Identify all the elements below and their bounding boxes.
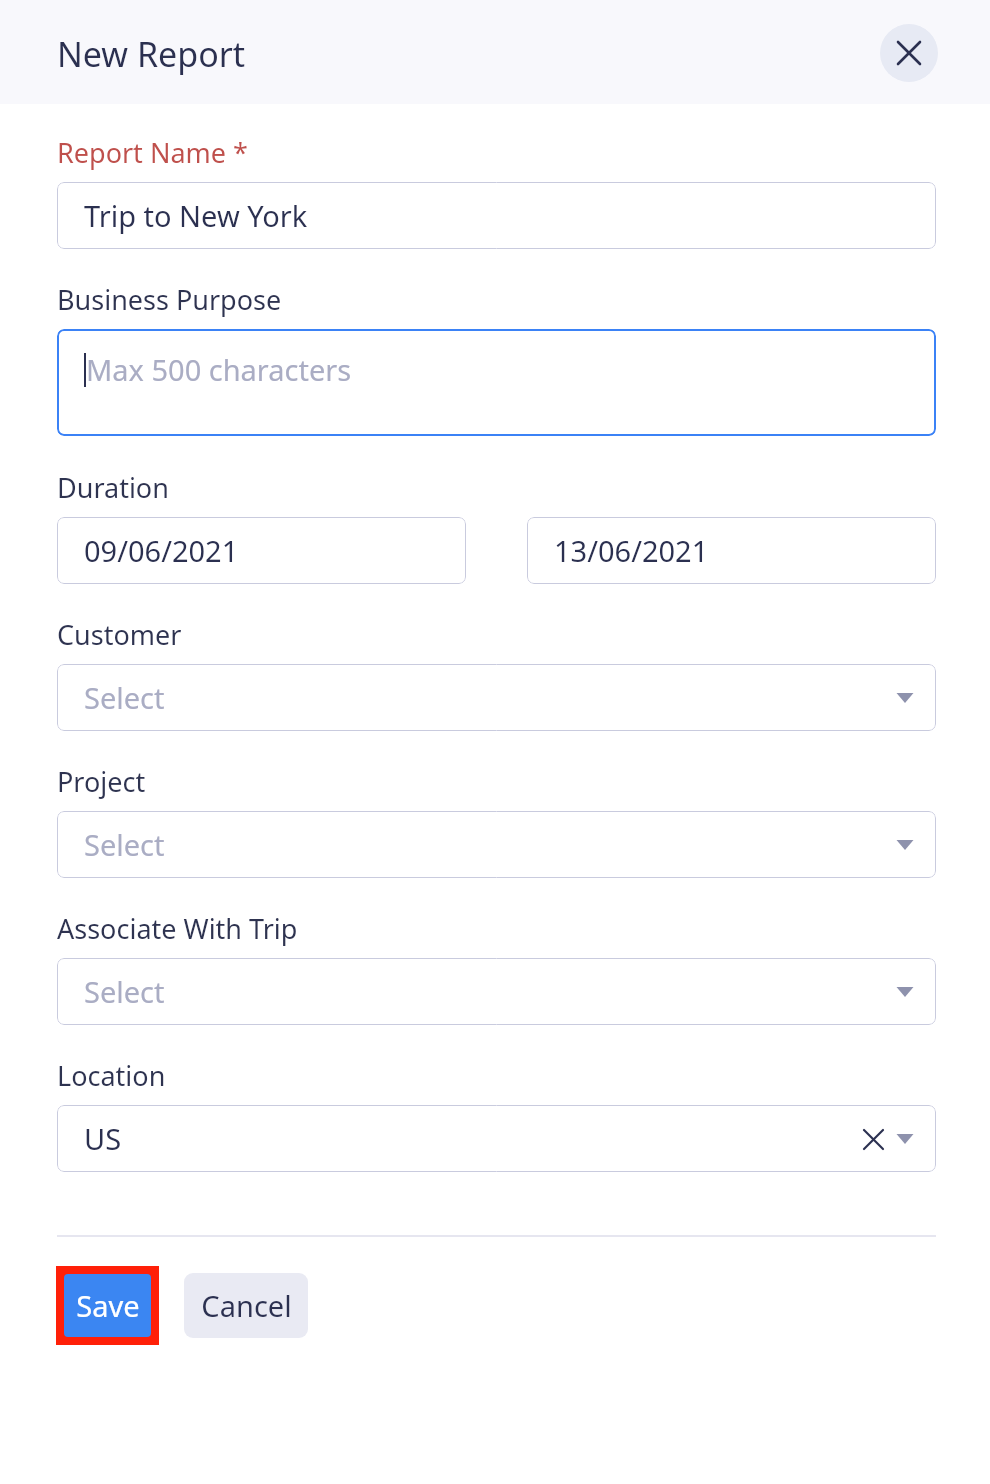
staticText: New Report	[57, 31, 246, 77]
staticText: US	[84, 1119, 122, 1158]
button[interactable]: Max 500 characters	[57, 329, 936, 436]
button[interactable]: Select	[57, 664, 936, 731]
button[interactable]: Close	[880, 24, 938, 82]
staticText: Customer	[57, 616, 182, 653]
staticText: Associate With Trip	[57, 910, 298, 947]
staticText: Trip to New York	[84, 196, 308, 235]
staticText: Select	[84, 972, 165, 1011]
staticText: Save	[76, 1286, 140, 1325]
staticText: Report Name *	[57, 134, 248, 171]
staticText: Duration	[57, 469, 169, 506]
button[interactable]: Clear location	[858, 1124, 888, 1154]
button[interactable]: US	[57, 1105, 936, 1172]
staticText: Select	[84, 825, 165, 864]
staticText: Location	[57, 1057, 166, 1094]
button[interactable]: Select	[57, 811, 936, 878]
staticText: 13/06/2021	[554, 531, 709, 570]
staticText: Max 500 characters	[86, 350, 352, 389]
button[interactable]: Cancel	[184, 1273, 308, 1338]
button[interactable]: 13/06/2021	[527, 517, 936, 584]
staticText: 09/06/2021	[84, 531, 239, 570]
staticText: Business Purpose	[57, 281, 282, 318]
button[interactable]: Save	[64, 1274, 151, 1337]
button[interactable]: 09/06/2021	[57, 517, 466, 584]
staticText: Project	[57, 763, 146, 800]
staticText: Cancel	[201, 1286, 292, 1325]
button[interactable]: Trip to New York	[57, 182, 936, 249]
staticText: Select	[84, 678, 165, 717]
button[interactable]: Select	[57, 958, 936, 1025]
